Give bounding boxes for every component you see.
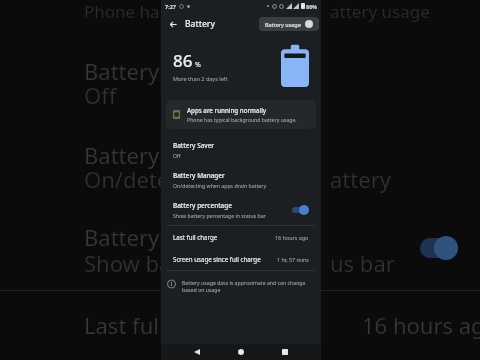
staticText: Last full charge xyxy=(173,233,275,241)
button[interactable]: Screen usage since full charge xyxy=(161,248,321,270)
staticText: Phone has typical background battery usa… xyxy=(187,116,297,123)
button[interactable]: Home xyxy=(233,344,249,360)
staticText: 16 hours ago xyxy=(275,234,309,241)
staticText: attery xyxy=(330,164,391,194)
staticText: More than 2 days left xyxy=(173,75,228,82)
staticText: 16 hours ago xyxy=(362,310,480,340)
staticText: Off xyxy=(84,80,117,110)
button[interactable]: Battery percentage xyxy=(161,195,321,225)
staticText: 86% xyxy=(306,3,317,10)
button[interactable]: Battery Saver xyxy=(161,135,321,165)
staticText: On/detecting when apps drain battery xyxy=(173,182,267,189)
staticText: Battery pe xyxy=(84,222,191,252)
button[interactable]: Battery Manager xyxy=(161,165,321,195)
staticText: Battery Manager xyxy=(173,171,225,180)
staticText: Last full c xyxy=(84,310,181,340)
staticText: % xyxy=(195,60,201,70)
staticText: Screen usage since full charge xyxy=(173,255,277,263)
button[interactable]: Recent apps xyxy=(277,344,293,360)
button[interactable]: Back xyxy=(165,16,181,32)
button[interactable]: Apps are running normally xyxy=(166,100,316,129)
staticText: Battery usage xyxy=(265,21,301,28)
staticText: Show batt xyxy=(84,248,188,278)
staticText: Apps are running normally xyxy=(187,106,267,114)
staticText: Battery usage data is approximate and ca… xyxy=(182,279,315,293)
staticText: On/detectin xyxy=(84,164,208,194)
staticText: 86 xyxy=(173,49,193,72)
staticText: Battery xyxy=(185,18,215,30)
staticText: Battery M xyxy=(84,140,185,170)
staticText: attery usage xyxy=(330,0,430,23)
staticText: 1 hr, 57 mins xyxy=(277,256,309,263)
staticText: us bar xyxy=(330,248,395,278)
staticText: Battery S xyxy=(84,56,178,86)
staticText: Battery Saver xyxy=(173,141,215,150)
staticText: 7:27 xyxy=(165,3,176,10)
button[interactable]: Last full charge xyxy=(161,226,321,248)
staticText: Show battery percentage in status bar xyxy=(173,212,266,219)
staticText: Battery percentage xyxy=(173,201,232,210)
staticText: Off xyxy=(173,152,181,159)
button[interactable]: Back xyxy=(189,344,205,360)
staticText: Phone has xyxy=(84,0,168,23)
button[interactable]: Battery usage xyxy=(259,17,319,31)
